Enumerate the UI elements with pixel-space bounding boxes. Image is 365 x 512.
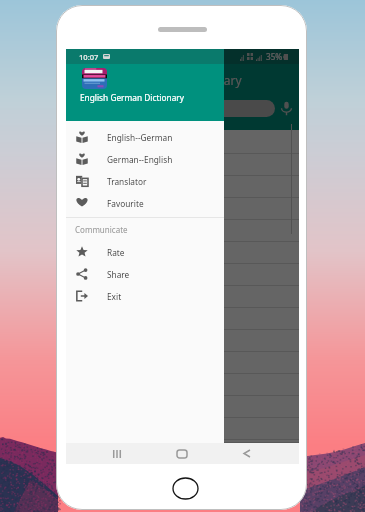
button[interactable] [66, 440, 299, 443]
staticText: Dictionary [184, 72, 242, 88]
button[interactable] [66, 154, 299, 176]
staticText: Communicate [75, 224, 128, 235]
staticText: English--German [107, 132, 173, 143]
button[interactable] [66, 198, 299, 220]
staticText: Rate [107, 247, 125, 258]
button[interactable] [66, 176, 299, 198]
button[interactable] [66, 330, 299, 352]
staticText: Share [107, 269, 130, 280]
button[interactable]: Share [66, 263, 224, 285]
button[interactable]: Voice search [280, 101, 293, 116]
button[interactable] [66, 396, 299, 418]
staticText: Exit [107, 291, 122, 302]
button[interactable]: Recents [101, 443, 133, 464]
button[interactable] [66, 374, 299, 396]
button[interactable]: Translator [66, 170, 224, 192]
button[interactable]: Back [231, 443, 263, 464]
button[interactable] [66, 242, 299, 264]
button[interactable]: English--German [66, 126, 224, 148]
button[interactable] [66, 308, 299, 330]
staticText: 10:07 [79, 52, 99, 62]
button[interactable]: Home [166, 443, 198, 464]
button[interactable] [66, 220, 299, 242]
staticText: German--English [107, 154, 173, 165]
button[interactable] [66, 352, 299, 374]
staticText: English German Dictionary [80, 92, 185, 103]
staticText: 35% [266, 51, 283, 62]
button[interactable]: Favourite [66, 192, 224, 214]
button[interactable] [66, 418, 299, 440]
button[interactable] [66, 131, 299, 154]
staticText: Favourite [107, 198, 144, 209]
button[interactable]: German--English [66, 148, 224, 170]
button[interactable] [66, 286, 299, 308]
staticText: Translator [107, 176, 147, 187]
button[interactable]: Exit [66, 285, 224, 307]
button[interactable]: Rate [66, 241, 224, 263]
button[interactable] [66, 264, 299, 286]
